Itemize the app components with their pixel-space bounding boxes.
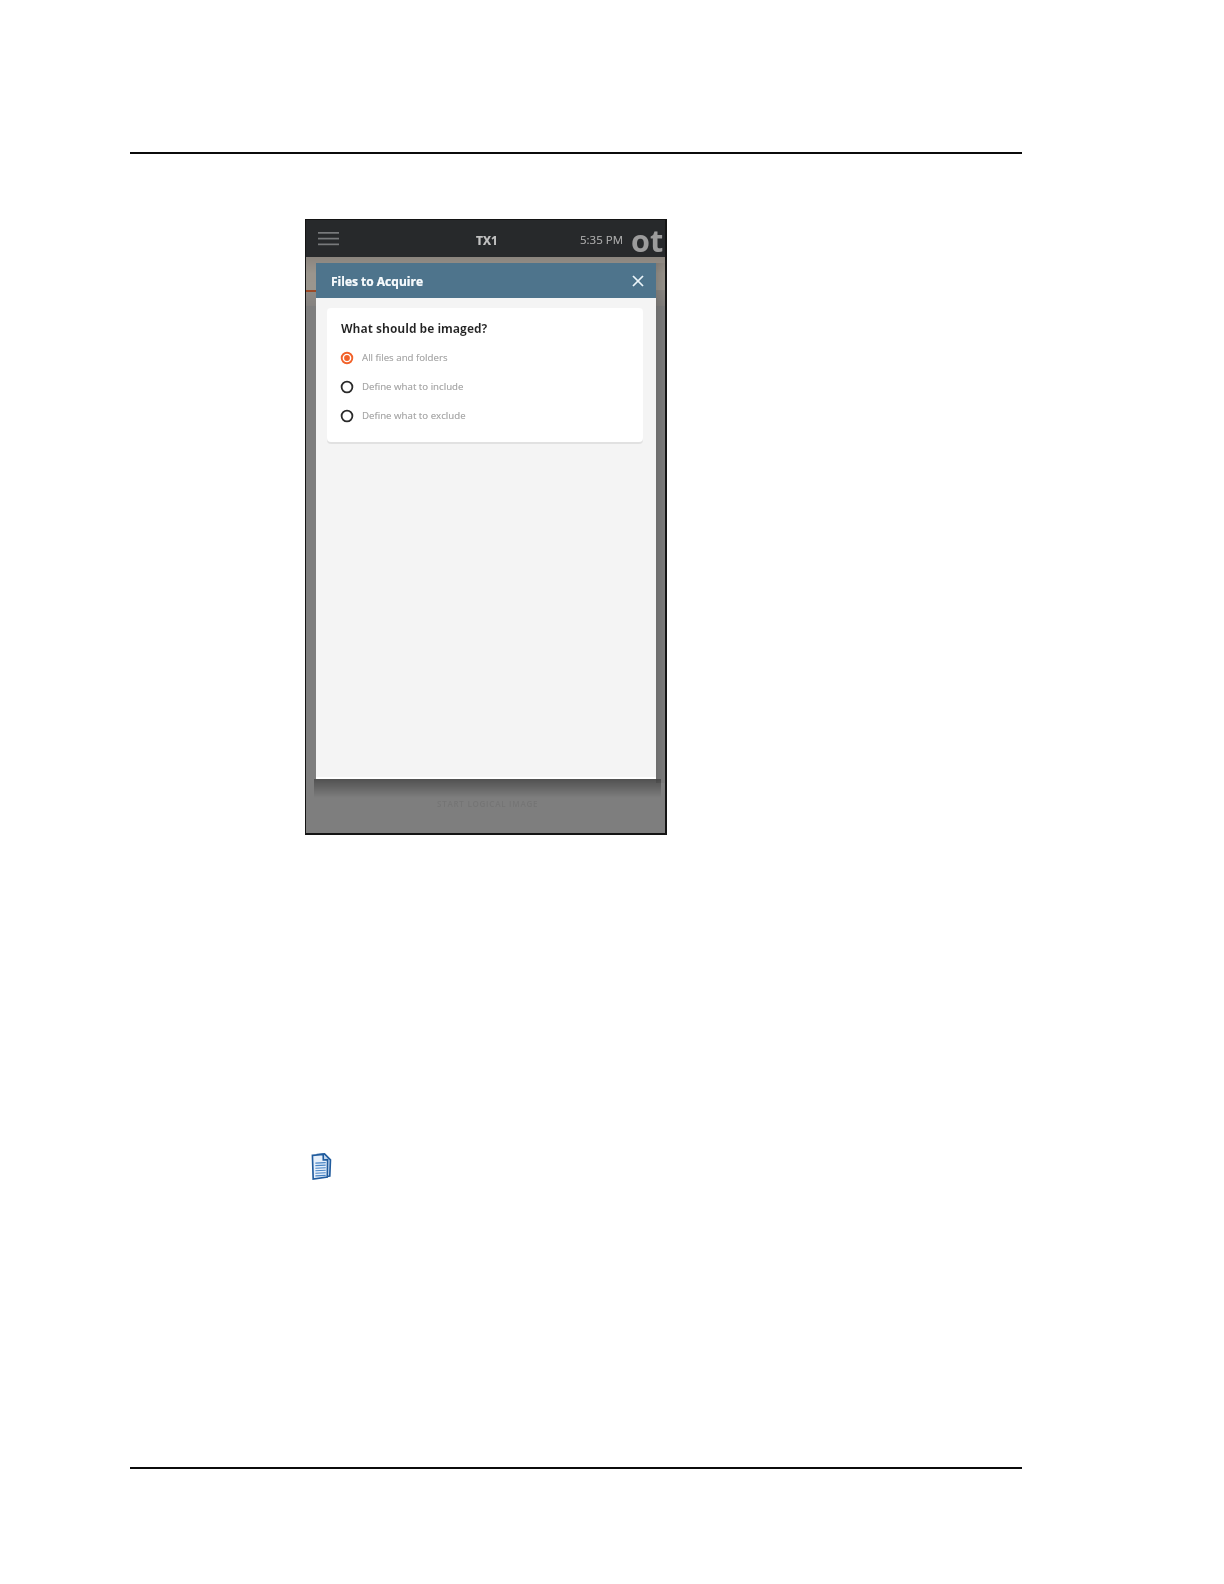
staticText: 5:35 PM (580, 232, 623, 248)
button[interactable]: Define what to exclude (332, 407, 564, 425)
staticText: ot (631, 219, 664, 256)
staticText: Define what to exclude (362, 409, 466, 422)
button[interactable]: All files and folders (332, 349, 564, 367)
staticText: Define what to include (362, 380, 464, 393)
button[interactable]: Define what to include (332, 378, 564, 396)
button[interactable]: Menu (310, 225, 346, 252)
button[interactable]: START LOGICAL IMAGE (306, 790, 665, 814)
staticText: All files and folders (362, 351, 448, 364)
button[interactable]: Close (626, 269, 650, 293)
staticText: What should be imaged? (341, 320, 488, 336)
staticText: TX1 (476, 232, 498, 248)
staticText: Files to Acquire (331, 273, 423, 289)
